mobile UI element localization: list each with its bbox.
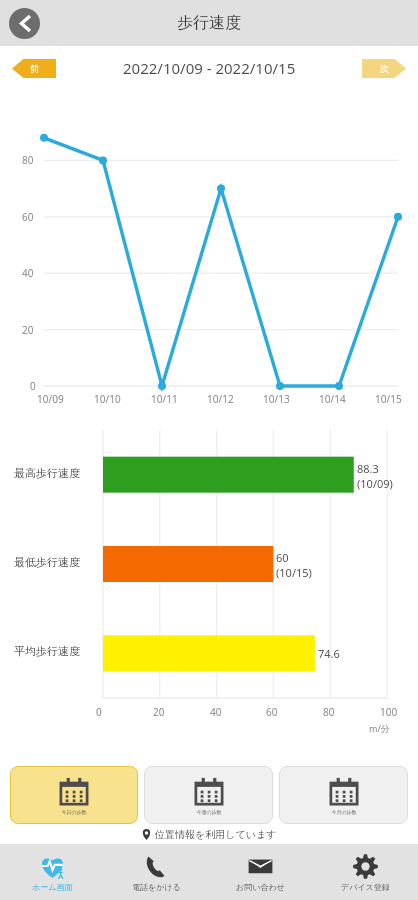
staticText: ホーム画面 [32, 882, 73, 892]
button[interactable]: お問い合わせ [208, 844, 313, 900]
staticText: 平均歩行速度 [14, 644, 80, 658]
staticText: 10/13 [263, 392, 290, 406]
staticText: 次 [380, 63, 389, 74]
staticText: 今日の歩数 [61, 809, 87, 815]
staticText: 今月の歩数 [331, 809, 357, 815]
staticText: 80 [323, 705, 335, 719]
staticText: 40 [22, 266, 34, 280]
button[interactable]: 今月の歩数 [279, 766, 408, 824]
staticText: 2022/10/09 - 2022/10/15 [123, 58, 296, 78]
staticText: 電話をかける [132, 882, 181, 892]
staticText: (10/15) [276, 565, 312, 580]
staticText: 10/15 [375, 392, 402, 406]
staticText: 88.3 [357, 461, 379, 476]
button[interactable]: 電話をかける [104, 844, 208, 900]
staticText: (10/09) [357, 476, 393, 491]
button[interactable]: Previous week [12, 59, 56, 78]
staticText: 80 [22, 153, 34, 167]
staticText: デバイス登録 [341, 882, 390, 892]
staticText: m/分 [369, 722, 390, 734]
button[interactable]: デバイス登録 [313, 844, 418, 900]
staticText: お問い合わせ [236, 882, 285, 892]
staticText: 60 [266, 705, 278, 719]
button[interactable]: Back [9, 8, 40, 39]
staticText: 20 [22, 323, 34, 337]
staticText: 10/09 [37, 392, 64, 406]
staticText: 20 [153, 705, 165, 719]
staticText: 100 [380, 705, 398, 719]
staticText: 前 [30, 63, 39, 74]
staticText: 0 [30, 379, 36, 393]
button[interactable]: ホーム画面 [0, 844, 104, 900]
staticText: 74.6 [318, 646, 340, 661]
button[interactable]: 今日の歩数 [10, 766, 138, 824]
staticText: 10/10 [94, 392, 121, 406]
staticText: 40 [210, 705, 222, 719]
staticText: 60 [276, 550, 289, 565]
staticText: 10/11 [151, 392, 178, 406]
button[interactable]: Next week [362, 59, 406, 78]
staticText: 60 [22, 210, 34, 224]
staticText: 今週の歩数 [196, 809, 222, 815]
button[interactable]: 今週の歩数 [144, 766, 273, 824]
staticText: 最高歩行速度 [14, 466, 80, 480]
staticText: 歩行速度 [177, 13, 241, 33]
staticText: 最低歩行速度 [14, 555, 80, 569]
staticText: 0 [96, 705, 102, 719]
staticText: 10/12 [207, 392, 234, 406]
staticText: 位置情報を利用しています [155, 828, 277, 841]
staticText: 10/14 [319, 392, 346, 406]
